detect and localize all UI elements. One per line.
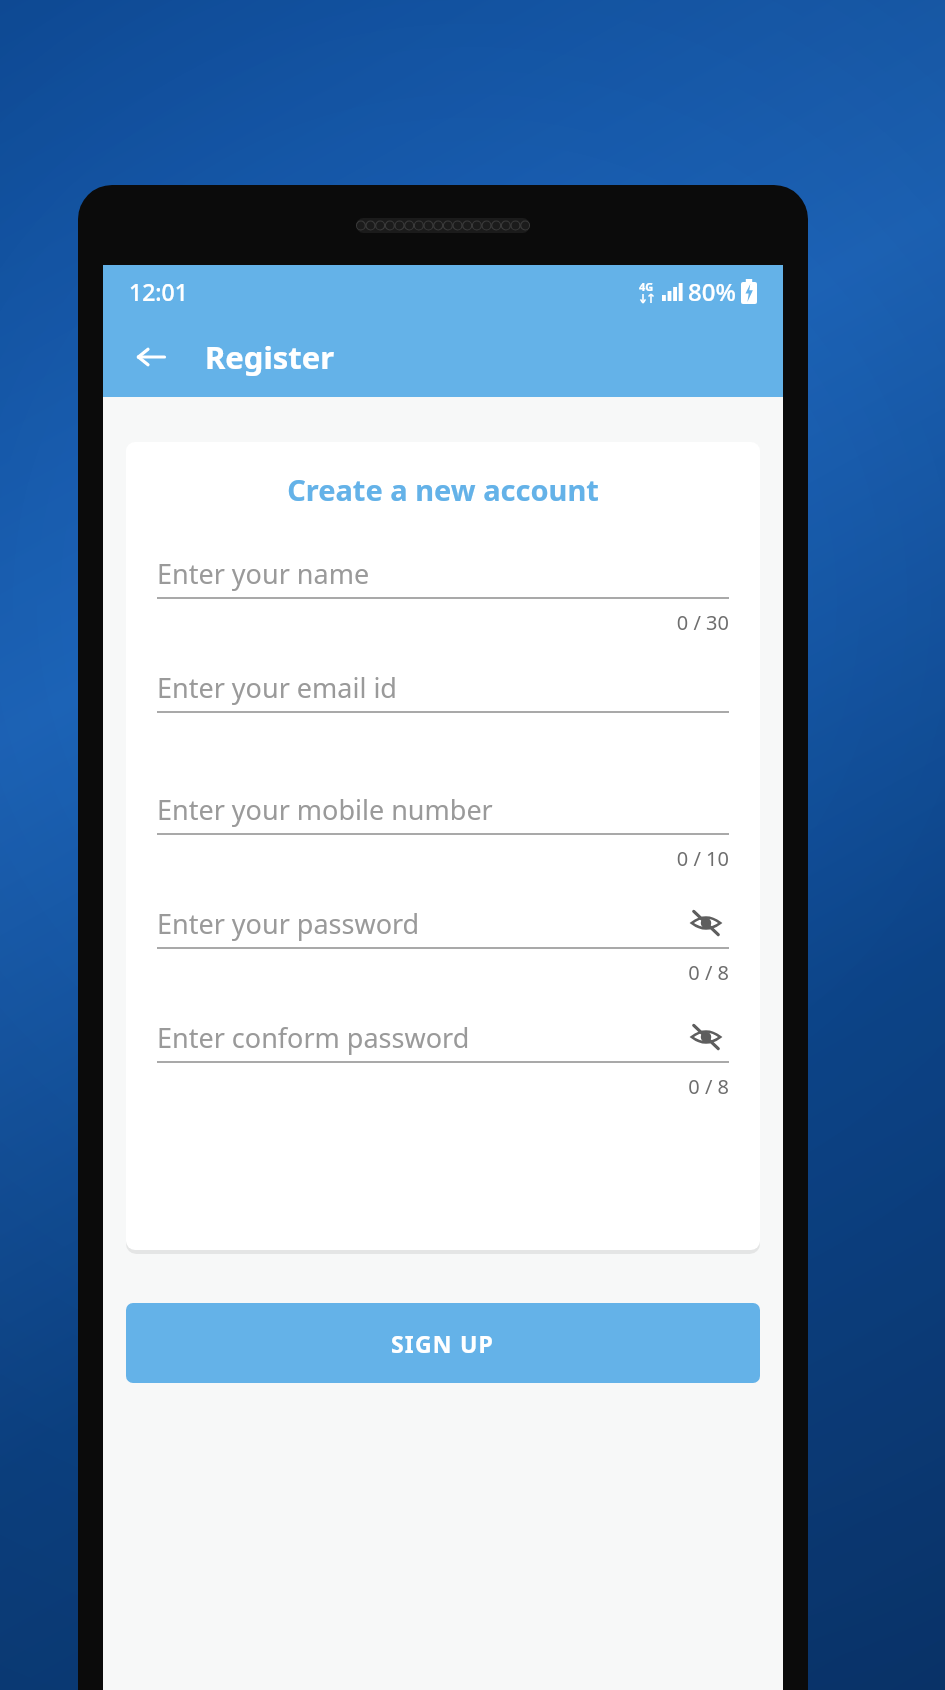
button[interactable]: Enter conform password (157, 1013, 729, 1100)
staticText: 80% (688, 275, 736, 308)
staticText: Enter your email id (157, 669, 729, 706)
staticText: 0 / 8 (157, 1073, 729, 1100)
staticText: Create a new account (157, 470, 729, 509)
button[interactable]: Toggle password visibility (683, 900, 729, 946)
button[interactable]: Toggle password visibility (683, 1014, 729, 1060)
staticText: 0 / 30 (157, 609, 729, 636)
staticText: 4G (639, 279, 654, 294)
staticText: SIGN UP (391, 1328, 495, 1359)
staticText: Register (205, 336, 335, 378)
staticText: 0 / 10 (157, 845, 729, 872)
staticText: 12:01 (129, 276, 188, 307)
staticText: Enter your password (157, 905, 683, 942)
staticText: 0 / 8 (157, 959, 729, 986)
button[interactable]: Enter your mobile number (157, 785, 729, 872)
button[interactable]: Enter your password (157, 899, 729, 986)
button[interactable]: Enter your name (157, 549, 729, 636)
button[interactable]: Enter your email id (157, 663, 729, 713)
staticText: Enter your mobile number (157, 791, 729, 828)
staticText: Enter conform password (157, 1019, 683, 1056)
button[interactable]: Back (125, 331, 177, 383)
staticText: Enter your name (157, 555, 729, 592)
button[interactable]: SIGN UP (126, 1303, 760, 1383)
